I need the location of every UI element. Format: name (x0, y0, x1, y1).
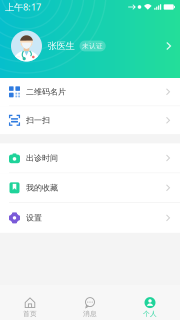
staticText: 张医生 (47, 40, 74, 52)
button[interactable]: 出诊时间 (0, 143, 180, 173)
button[interactable]: 首页 (0, 285, 60, 320)
staticText: 首页 (23, 310, 37, 318)
button[interactable]: 个人 (120, 285, 180, 320)
staticText: 出诊时间 (26, 153, 58, 163)
button[interactable]: 消息 (60, 285, 120, 320)
staticText: 设置 (26, 213, 42, 223)
staticText: 未认证 (82, 42, 103, 50)
staticText: 二维码名片 (26, 87, 66, 97)
button[interactable]: 张医生 (0, 14, 180, 78)
staticText: 消息 (83, 310, 97, 318)
staticText: 上午8:17 (5, 1, 41, 13)
button[interactable]: 我的收藏 (0, 173, 180, 203)
staticText: 我的收藏 (26, 183, 58, 193)
button[interactable]: 扫一扫 (0, 106, 180, 134)
staticText: 扫一扫 (26, 115, 50, 125)
staticText: 个人 (143, 310, 157, 318)
button[interactable]: 设置 (0, 203, 180, 233)
button[interactable]: 二维码名片 (0, 78, 180, 106)
